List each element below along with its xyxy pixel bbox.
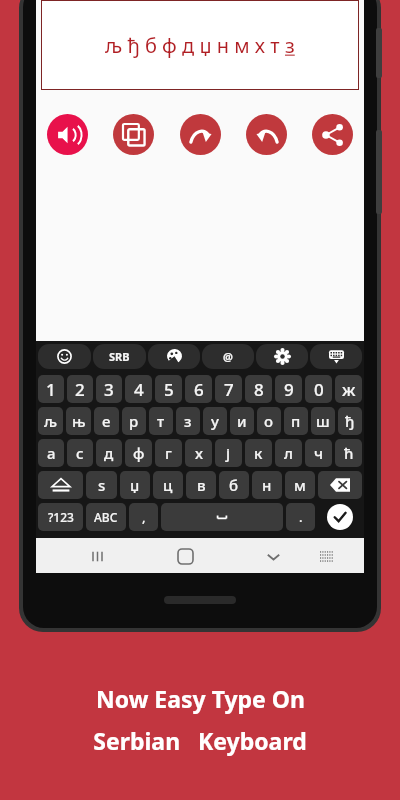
button[interactable]: 2 xyxy=(67,375,93,403)
button[interactable]: џ xyxy=(120,471,150,499)
button[interactable]: Copy xyxy=(113,114,154,155)
staticText: к xyxy=(254,443,263,463)
staticText: г xyxy=(165,443,172,463)
button[interactable]: з xyxy=(176,407,200,435)
button[interactable]: ш xyxy=(311,407,335,435)
staticText: ј xyxy=(226,443,231,463)
button[interactable]: Speak xyxy=(47,114,88,155)
button[interactable]: ?123 xyxy=(38,503,83,531)
button[interactable]: Home xyxy=(170,541,200,571)
staticText: х xyxy=(195,443,203,463)
staticText: @ xyxy=(223,349,233,364)
button[interactable]: а xyxy=(38,439,64,467)
button[interactable]: SRB xyxy=(93,344,146,369)
button[interactable]: њ xyxy=(66,407,91,435)
button[interactable]: Keyboard xyxy=(310,344,362,369)
button[interactable]: Backspace xyxy=(318,471,362,499)
staticText: и xyxy=(237,411,247,431)
button[interactable]: х xyxy=(185,439,212,467)
staticText: 1 xyxy=(46,378,56,401)
button[interactable]: б xyxy=(219,471,249,499)
button[interactable]: 9 xyxy=(275,375,302,403)
staticText: ч xyxy=(314,443,324,463)
button[interactable]: ц xyxy=(153,471,183,499)
button[interactable]: е xyxy=(94,407,119,435)
staticText: е xyxy=(102,411,111,431)
staticText: у xyxy=(211,411,219,431)
button[interactable]: 0 xyxy=(305,375,332,403)
button[interactable]: ч xyxy=(305,439,332,467)
button[interactable]: Space xyxy=(161,503,283,531)
staticText: д xyxy=(104,443,114,463)
staticText: з xyxy=(184,411,192,431)
staticText: 9 xyxy=(284,378,294,401)
button[interactable]: 7 xyxy=(215,375,242,403)
button[interactable]: 4 xyxy=(125,375,152,403)
button[interactable]: љ xyxy=(38,407,63,435)
button[interactable]: 3 xyxy=(96,375,122,403)
button[interactable]: Enter xyxy=(327,504,353,530)
staticText: 8 xyxy=(254,378,264,401)
button[interactable]: ђ xyxy=(338,407,362,435)
button[interactable]: s xyxy=(86,471,117,499)
button[interactable]: н xyxy=(252,471,282,499)
button[interactable]: ј xyxy=(215,439,242,467)
button[interactable]: г xyxy=(155,439,182,467)
staticText: м xyxy=(294,475,306,495)
staticText: ф xyxy=(133,443,145,463)
button[interactable]: о xyxy=(257,407,281,435)
button[interactable]: л xyxy=(275,439,302,467)
button[interactable]: Settings xyxy=(256,344,308,369)
button[interactable]: 8 xyxy=(245,375,272,403)
button[interactable]: Shift xyxy=(38,471,83,499)
button[interactable]: ж xyxy=(335,375,362,403)
button[interactable]: Hide keyboard xyxy=(258,541,288,571)
button[interactable]: . xyxy=(286,503,315,531)
button[interactable]: Undo xyxy=(246,114,287,155)
staticText: з xyxy=(285,32,295,59)
button[interactable]: @ xyxy=(202,344,254,369)
staticText: љ ђ б ф д џ н м х т xyxy=(105,32,285,59)
button[interactable]: Switch keyboard xyxy=(312,541,342,571)
staticText: s xyxy=(98,475,106,495)
button[interactable]: т xyxy=(149,407,173,435)
button[interactable]: д xyxy=(96,439,122,467)
staticText: 2 xyxy=(75,378,85,401)
button[interactable]: м xyxy=(285,471,315,499)
staticText: Serbian Keyboard xyxy=(93,725,307,756)
staticText: т xyxy=(157,411,165,431)
staticText: с xyxy=(76,443,84,463)
button[interactable]: к xyxy=(245,439,272,467)
button[interactable]: р xyxy=(122,407,146,435)
button[interactable]: љ ђ б ф д џ н м х т xyxy=(41,0,359,90)
button[interactable]: Redo xyxy=(180,114,221,155)
button[interactable]: Emoji xyxy=(38,344,91,369)
button[interactable]: и xyxy=(230,407,254,435)
button[interactable]: , xyxy=(129,503,158,531)
button[interactable]: ћ xyxy=(335,439,362,467)
button[interactable]: Recents xyxy=(82,541,112,571)
staticText: а xyxy=(47,443,56,463)
button[interactable]: 1 xyxy=(38,375,64,403)
button[interactable]: п xyxy=(284,407,308,435)
button[interactable]: в xyxy=(186,471,216,499)
staticText: 3 xyxy=(104,378,114,401)
staticText: , xyxy=(142,508,146,526)
staticText: 0 xyxy=(314,378,324,401)
staticText: џ xyxy=(130,475,140,495)
staticText: ш xyxy=(316,411,330,431)
button[interactable]: ф xyxy=(125,439,152,467)
staticText: 7 xyxy=(224,378,234,401)
button[interactable]: ABC xyxy=(86,503,126,531)
button[interactable]: с xyxy=(67,439,93,467)
staticText: п xyxy=(291,411,301,431)
staticText: ?123 xyxy=(48,509,74,525)
button[interactable]: у xyxy=(203,407,227,435)
staticText: њ xyxy=(72,411,86,431)
staticText: љ xyxy=(44,411,58,431)
button[interactable]: Theme xyxy=(148,344,200,369)
staticText: ж xyxy=(342,378,356,401)
button[interactable]: 5 xyxy=(155,375,182,403)
button[interactable]: Share xyxy=(312,114,353,155)
button[interactable]: 6 xyxy=(185,375,212,403)
